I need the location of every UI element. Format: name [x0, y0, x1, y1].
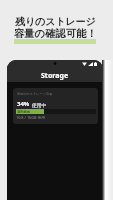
staticText: 34%使用 — [17, 110, 30, 114]
staticText: 残りのストレージ — [15, 15, 96, 27]
staticText: 34% — [17, 100, 30, 108]
staticText: 使用中 — [32, 102, 47, 108]
button[interactable]: 使用中のストレージ容量 — [13, 88, 98, 124]
staticText: 使用中のストレージ容量 — [17, 92, 53, 96]
staticText: 容量の確認可能！ — [14, 27, 97, 40]
staticText: 10.8 / 16GB 使用 — [16, 115, 46, 120]
staticText: Storage — [41, 71, 69, 81]
